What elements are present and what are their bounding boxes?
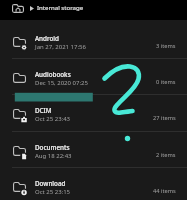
staticText: Oct 25 23:15 (35, 188, 71, 196)
staticText: Jan 27, 2021 17:56 (35, 43, 86, 51)
staticText: Aug 18 22:43 (35, 152, 72, 160)
staticText: Dec 15, 2020 07:25 (35, 79, 88, 87)
button[interactable]: Documents (0, 131, 187, 167)
staticText: Documents (35, 143, 70, 152)
staticText: DCIM (35, 106, 52, 115)
staticText: Android (35, 34, 59, 43)
staticText: 3 items (156, 42, 176, 50)
staticText: Download (35, 179, 66, 188)
staticText: Internal storage (37, 3, 84, 11)
button[interactable]: Home (12, 4, 24, 13)
button[interactable]: Audiobooks (0, 58, 187, 94)
staticText: 44 items (153, 187, 176, 195)
button[interactable]: Android (0, 22, 187, 58)
staticText: Audiobooks (35, 70, 71, 79)
button[interactable]: Download (0, 167, 187, 200)
button[interactable]: DCIM (0, 94, 187, 130)
staticText: 2 items (156, 151, 176, 159)
staticText: 0 items (156, 78, 176, 86)
staticText: Oct 25 23:43 (35, 115, 71, 123)
staticText: 27 items (153, 114, 176, 122)
